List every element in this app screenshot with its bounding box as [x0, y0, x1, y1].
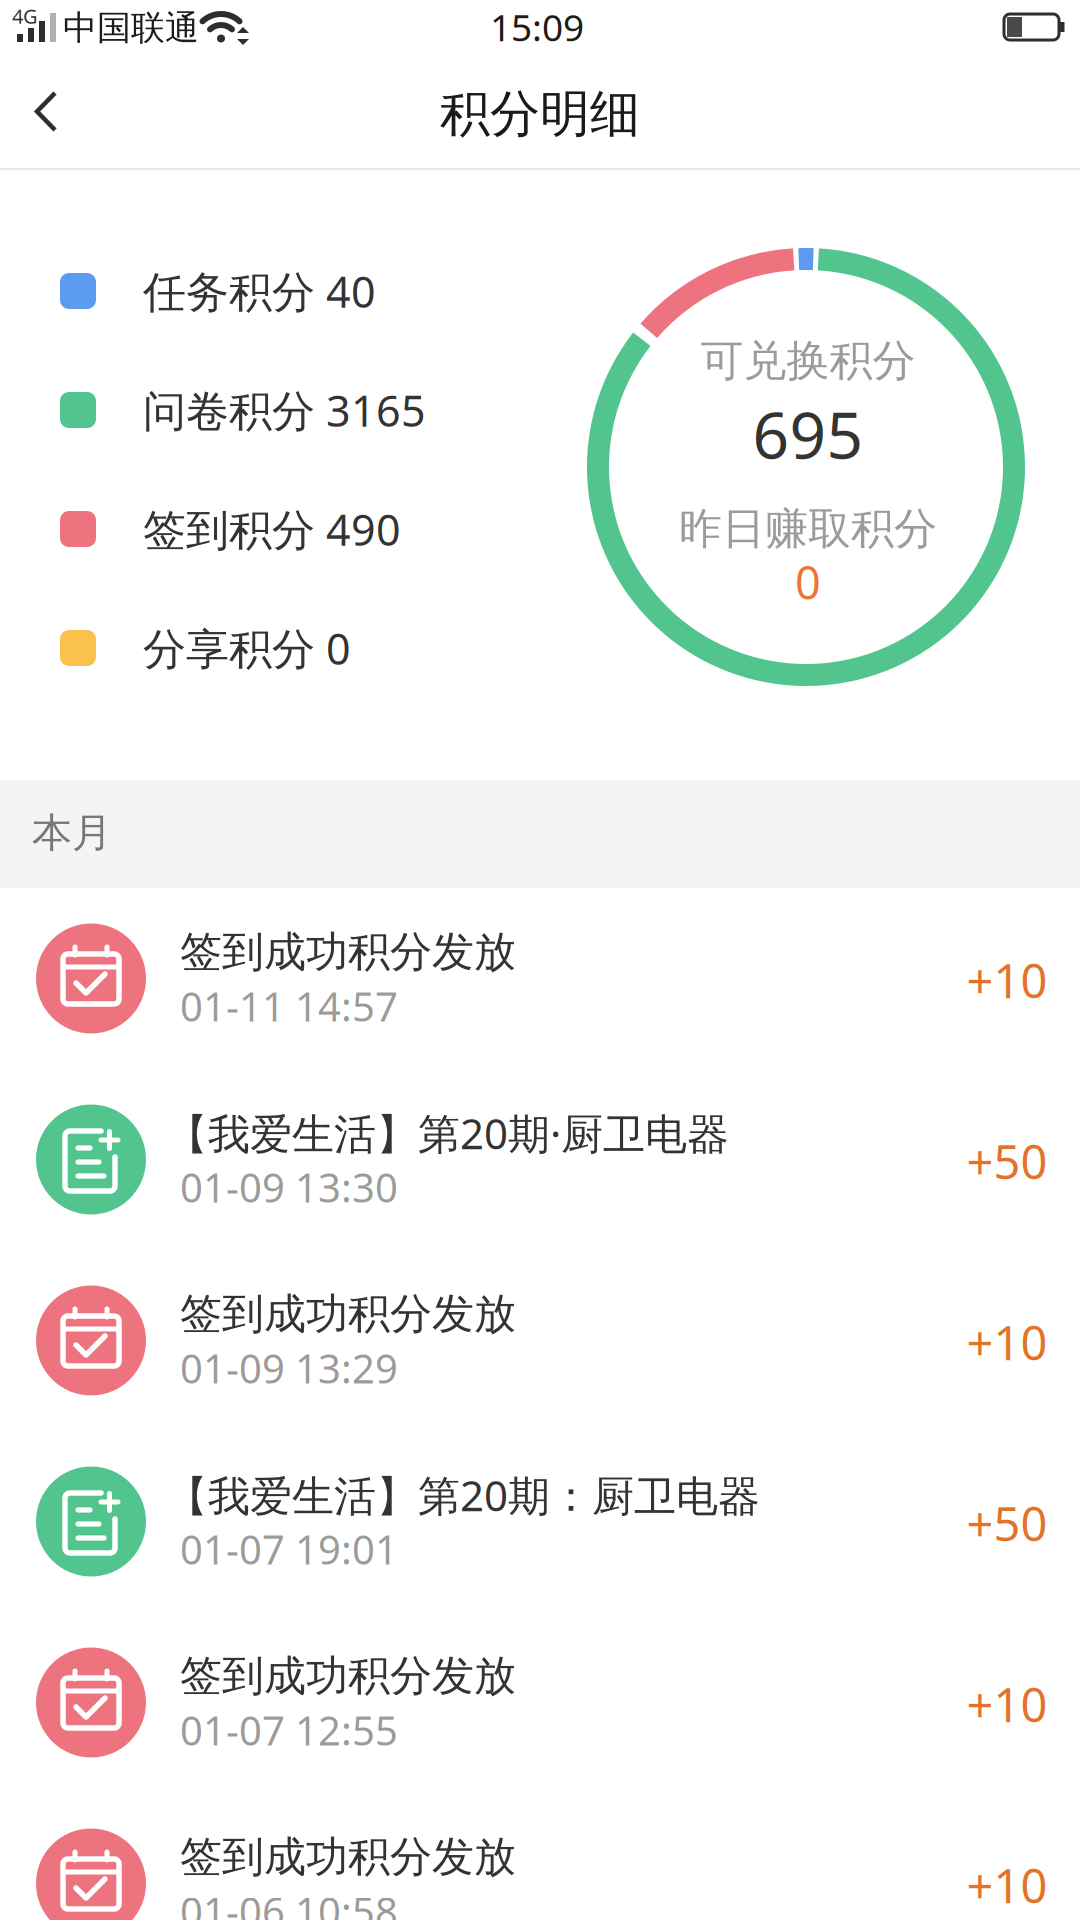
button[interactable]: 【我爱生活】第20期·厨卫电器	[0, 1069, 1080, 1250]
staticText: 【我爱生活】第20期·厨卫电器	[166, 1104, 729, 1162]
staticText: 签到成功积分发放	[180, 1649, 516, 1702]
staticText: +50	[966, 1491, 1047, 1555]
staticText: +50	[966, 1129, 1047, 1193]
staticText: 可兑换积分	[700, 334, 915, 388]
button[interactable]: 签到成功积分发放	[0, 1250, 1080, 1431]
staticText: 695	[752, 390, 863, 478]
staticText: +10	[966, 948, 1047, 1012]
staticText: 15:09	[490, 2, 584, 52]
staticText: 问卷积分 3165	[143, 381, 426, 439]
staticText: 01-07 19:01	[180, 1522, 398, 1576]
staticText: 01-09 13:29	[180, 1341, 398, 1395]
button[interactable]: 签到成功积分发放	[0, 888, 1080, 1069]
button[interactable]: Back	[0, 70, 90, 154]
staticText: 签到成功积分发放	[180, 1830, 516, 1883]
staticText: 分享积分 0	[143, 619, 351, 677]
staticText: 签到成功积分发放	[180, 925, 516, 978]
staticText: 01-07 12:55	[180, 1703, 398, 1757]
button[interactable]: 签到成功积分发放	[0, 1612, 1080, 1793]
staticText: 本月	[32, 808, 112, 858]
staticText: +10	[966, 1672, 1047, 1736]
staticText: 【我爱生活】第20期：厨卫电器	[166, 1466, 760, 1524]
staticText: 任务积分 40	[143, 262, 376, 320]
staticText: 4G	[12, 2, 38, 30]
staticText: +10	[966, 1853, 1047, 1917]
staticText: 签到成功积分发放	[180, 1287, 516, 1340]
staticText: 01-06 10:58	[180, 1884, 398, 1920]
button[interactable]: 【我爱生活】第20期：厨卫电器	[0, 1431, 1080, 1612]
staticText: 01-11 14:57	[180, 979, 398, 1033]
staticText: 积分明细	[440, 82, 640, 145]
staticText: 签到积分 490	[143, 500, 401, 558]
staticText: 昨日赚取积分	[679, 502, 937, 556]
staticText: 0	[795, 551, 821, 613]
button[interactable]: 签到成功积分发放	[0, 1793, 1080, 1920]
staticText: 中国联通	[63, 7, 199, 49]
staticText: 01-09 13:30	[180, 1160, 398, 1214]
staticText: +10	[966, 1310, 1047, 1374]
